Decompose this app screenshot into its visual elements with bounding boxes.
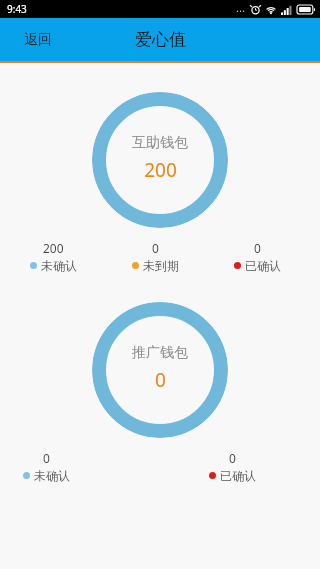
staticText: 互助钱包 <box>132 134 188 152</box>
staticText: 0 <box>152 240 159 256</box>
button[interactable]: 0 <box>234 240 281 273</box>
button[interactable]: 0 <box>209 450 256 483</box>
button[interactable]: 推广钱包 <box>92 302 228 438</box>
button[interactable]: 200 <box>30 240 77 273</box>
staticText: 200 <box>144 157 177 183</box>
staticText: 未确认 <box>34 468 70 483</box>
staticText: 返回 <box>24 31 52 49</box>
staticText: 0 <box>254 240 261 256</box>
staticText: 已确认 <box>245 258 281 273</box>
button[interactable]: 互助钱包 <box>92 92 228 228</box>
button[interactable]: 返回 <box>14 25 62 55</box>
staticText: 未确认 <box>41 258 77 273</box>
button[interactable]: 0 <box>132 240 179 273</box>
staticText: 0 <box>43 450 50 466</box>
staticText: 推广钱包 <box>132 344 188 362</box>
staticText: 爱心值 <box>135 29 186 50</box>
staticText: 已确认 <box>220 468 256 483</box>
button[interactable]: 0 <box>23 450 70 483</box>
staticText: 200 <box>43 240 64 256</box>
staticText: 未到期 <box>143 258 179 273</box>
staticText: 0 <box>229 450 236 466</box>
staticText: 9:43 <box>7 2 27 16</box>
staticText: 0 <box>155 367 166 393</box>
